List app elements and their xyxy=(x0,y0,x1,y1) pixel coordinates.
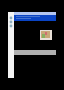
button[interactable]: Nav item 3 xyxy=(9,24,13,28)
button[interactable]: Photo xyxy=(40,30,52,40)
button[interactable]: Nav item 2 xyxy=(9,20,13,24)
button[interactable] xyxy=(14,15,56,21)
button[interactable]: Nav item 1 xyxy=(9,16,13,20)
